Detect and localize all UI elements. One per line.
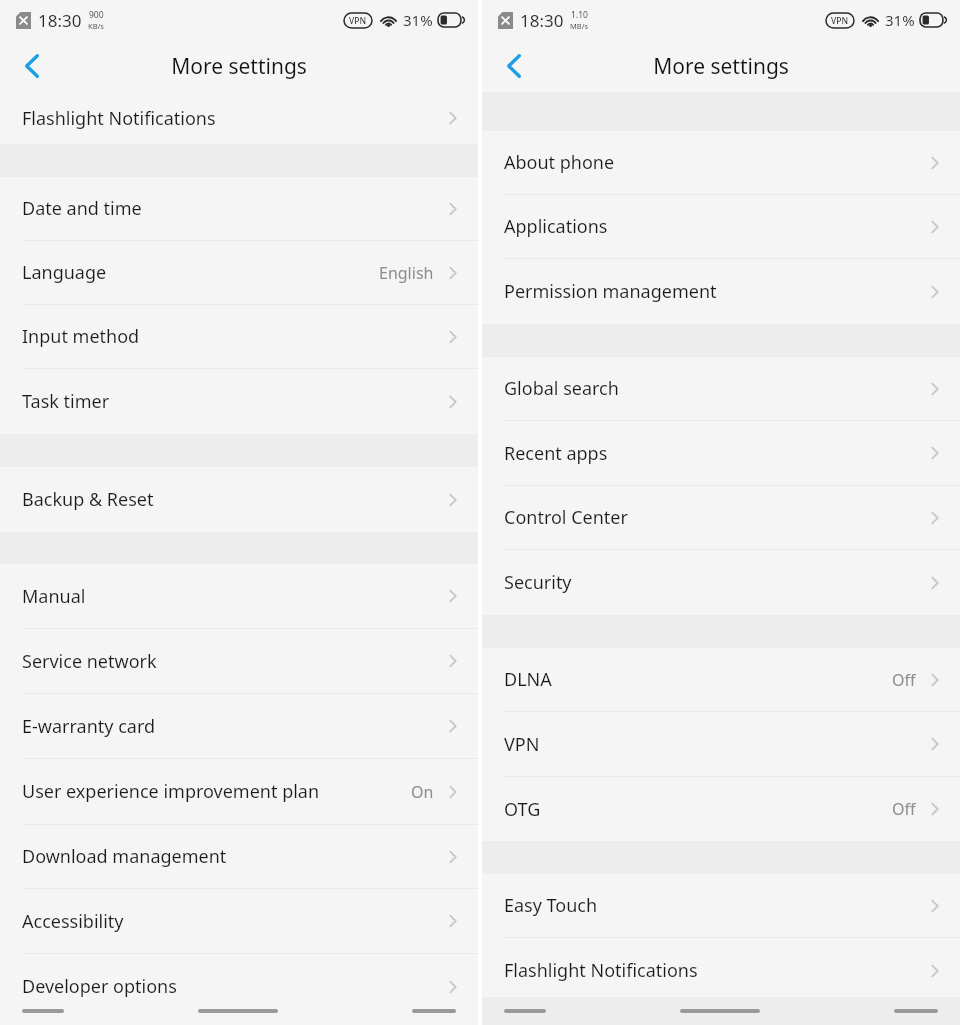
button[interactable]: About phone: [482, 131, 960, 195]
other: Recent apps: [22, 1009, 64, 1013]
staticText: E-warranty card: [22, 714, 444, 739]
staticText: User experience improvement plan: [22, 779, 411, 804]
staticText: 31%: [403, 10, 433, 30]
button[interactable]: E-warranty card: [0, 694, 478, 759]
staticText: On: [411, 781, 434, 803]
other: Back: [412, 1009, 456, 1013]
staticText: Flashlight Notifications: [22, 106, 444, 131]
staticText: Backup & Reset: [22, 487, 444, 512]
button[interactable]: Language: [0, 241, 478, 305]
staticText: MB/s: [570, 21, 589, 31]
button[interactable]: Easy Touch: [482, 874, 960, 938]
staticText: DLNA: [504, 667, 892, 692]
button[interactable]: Download management: [0, 825, 478, 889]
staticText: Off: [892, 798, 916, 820]
staticText: Easy Touch: [504, 893, 926, 918]
button[interactable]: DLNA: [482, 648, 960, 712]
button[interactable]: Date and time: [0, 177, 478, 241]
staticText: Manual: [22, 584, 444, 609]
staticText: Control Center: [504, 505, 926, 530]
staticText: KB/s: [88, 21, 104, 31]
button[interactable]: Back: [8, 42, 56, 90]
staticText: Recent apps: [504, 441, 926, 466]
staticText: Task timer: [22, 389, 444, 414]
staticText: 900: [89, 9, 104, 21]
button[interactable]: User experience improvement plan: [0, 759, 478, 825]
button[interactable]: Flashlight Notifications: [0, 92, 478, 144]
staticText: 18:30: [520, 9, 564, 32]
staticText: Permission management: [504, 279, 926, 304]
staticText: More settings: [171, 52, 307, 81]
button[interactable]: Permission management: [482, 259, 960, 324]
other: Recent apps: [504, 1009, 546, 1013]
staticText: VPN: [831, 15, 849, 27]
staticText: About phone: [504, 150, 926, 175]
staticText: Flashlight Notifications: [504, 958, 926, 983]
staticText: 18:30: [38, 9, 82, 32]
other: Home: [198, 1009, 278, 1013]
staticText: VPN: [349, 15, 367, 27]
staticText: Global search: [504, 376, 926, 401]
staticText: 31%: [885, 10, 915, 30]
button[interactable]: Task timer: [0, 369, 478, 434]
staticText: Input method: [22, 324, 444, 349]
staticText: Applications: [504, 214, 926, 239]
staticText: Security: [504, 570, 926, 595]
staticText: More settings: [653, 52, 789, 81]
button[interactable]: VPN: [482, 712, 960, 777]
staticText: OTG: [504, 797, 892, 822]
button[interactable]: Control Center: [482, 486, 960, 550]
staticText: Language: [22, 260, 379, 285]
staticText: Accessibility: [22, 909, 444, 934]
button[interactable]: Developer options: [0, 954, 478, 1019]
button[interactable]: Input method: [0, 305, 478, 369]
other: Home: [680, 1009, 760, 1013]
staticText: Download management: [22, 844, 444, 869]
button[interactable]: Global search: [482, 357, 960, 421]
staticText: Date and time: [22, 196, 444, 221]
button[interactable]: Flashlight Notifications: [482, 938, 960, 1003]
other: Back: [894, 1009, 938, 1013]
staticText: Service network: [22, 649, 444, 674]
staticText: English: [379, 262, 434, 284]
button[interactable]: Applications: [482, 195, 960, 259]
staticText: Off: [892, 669, 916, 691]
button[interactable]: Security: [482, 550, 960, 615]
staticText: 1.10: [571, 9, 588, 21]
button[interactable]: OTG: [482, 777, 960, 841]
button[interactable]: Service network: [0, 629, 478, 694]
button[interactable]: Back: [490, 42, 538, 90]
button[interactable]: Backup & Reset: [0, 467, 478, 532]
staticText: VPN: [504, 732, 926, 757]
button[interactable]: Recent apps: [482, 421, 960, 486]
button[interactable]: Manual: [0, 564, 478, 629]
staticText: Developer options: [22, 974, 444, 999]
button[interactable]: Accessibility: [0, 889, 478, 954]
